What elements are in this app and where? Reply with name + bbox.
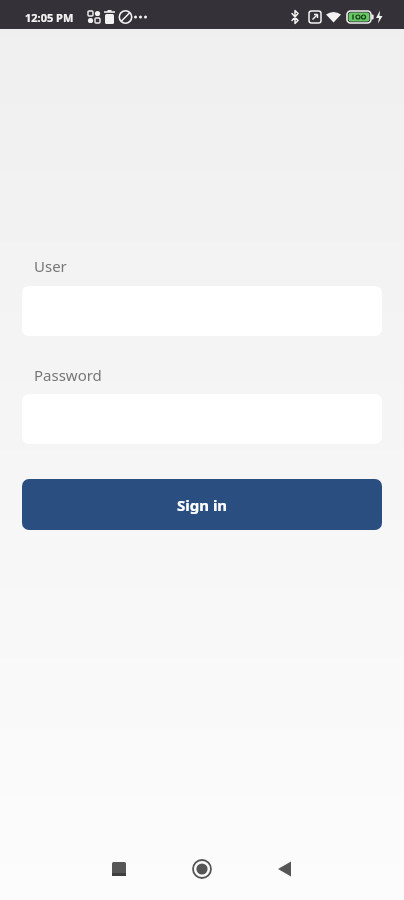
button[interactable] xyxy=(95,845,143,893)
staticText: Sign in xyxy=(177,495,228,515)
staticText: Password xyxy=(34,365,102,385)
staticText: 12:05 PM xyxy=(25,10,74,25)
staticText: User xyxy=(34,256,67,276)
button[interactable] xyxy=(178,845,226,893)
button[interactable]: Sign in xyxy=(22,479,382,530)
button[interactable] xyxy=(261,845,309,893)
